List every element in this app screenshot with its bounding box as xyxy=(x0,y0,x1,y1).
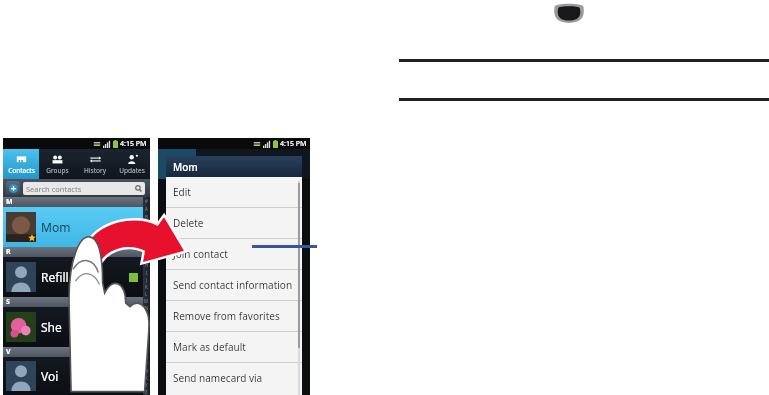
button[interactable]: Mom xyxy=(3,207,143,247)
staticText: Mark as default xyxy=(173,340,246,354)
staticText: V xyxy=(6,347,11,357)
staticText: N xyxy=(145,305,149,311)
staticText: Remove from favorites xyxy=(173,309,280,323)
staticText: She xyxy=(41,319,62,335)
staticText: W xyxy=(144,368,149,374)
button[interactable]: Send namecard via xyxy=(166,363,302,393)
button[interactable]: Add contact xyxy=(6,181,20,195)
staticText: Updates xyxy=(119,166,145,175)
button[interactable]: Voi xyxy=(3,357,143,395)
staticText: M xyxy=(6,197,13,207)
staticText: 4:15 PM xyxy=(280,139,307,149)
staticText: Send contact information xyxy=(173,278,293,292)
button[interactable]: Refill N xyxy=(3,257,143,297)
staticText: Join contact xyxy=(173,247,228,261)
button[interactable]: She xyxy=(3,307,143,347)
staticText: History xyxy=(84,166,106,175)
staticText: Edit xyxy=(173,185,191,199)
button[interactable]: History xyxy=(76,149,113,179)
staticText: Voi xyxy=(41,368,59,384)
button[interactable]: Updates xyxy=(113,149,150,179)
button[interactable]: Remove from favorites xyxy=(166,301,302,331)
staticText: X xyxy=(145,375,148,381)
staticText: Y xyxy=(145,382,148,388)
staticText: Groups xyxy=(46,166,69,175)
staticText: T xyxy=(145,347,148,353)
button[interactable]: Home key xyxy=(551,2,587,24)
staticText: I xyxy=(146,270,148,276)
button[interactable]: Alphabet index xyxy=(143,197,150,395)
staticText: L xyxy=(145,291,148,297)
staticText: P xyxy=(145,319,148,325)
staticText: S xyxy=(6,297,10,307)
staticText: A xyxy=(145,206,148,212)
staticText: M xyxy=(144,298,149,304)
staticText: B xyxy=(145,214,148,220)
staticText: V xyxy=(145,361,148,367)
button[interactable]: Delete xyxy=(166,208,302,238)
staticText: R xyxy=(6,247,11,257)
button[interactable]: Groups xyxy=(39,149,76,179)
staticText: 4:15 PM xyxy=(120,139,147,149)
staticText: Mom xyxy=(41,219,71,235)
staticText: U xyxy=(145,354,149,360)
staticText: Send namecard via xyxy=(173,371,263,385)
staticText: Contacts xyxy=(8,166,35,175)
staticText: Z xyxy=(145,389,148,395)
button[interactable]: Join contact xyxy=(166,239,302,269)
staticText: Refill N xyxy=(41,269,81,285)
staticText: O xyxy=(145,312,149,318)
staticText: Delete xyxy=(173,216,204,230)
staticText: H xyxy=(145,262,149,268)
staticText: R xyxy=(145,333,148,339)
button[interactable]: Search contacts xyxy=(23,182,145,195)
staticText: Q xyxy=(145,326,149,332)
staticText: # xyxy=(145,198,148,204)
staticText: S xyxy=(145,340,148,346)
staticText: K xyxy=(145,284,148,290)
staticText: Mom xyxy=(173,160,198,174)
staticText: Displaying 11 contacts xyxy=(197,381,271,391)
button[interactable]: Edit xyxy=(166,177,302,207)
staticText: J xyxy=(146,277,148,283)
staticText: Search contacts xyxy=(26,184,82,194)
button[interactable]: Mark as default xyxy=(166,332,302,362)
button[interactable]: Contacts xyxy=(3,149,39,179)
button[interactable]: Send contact information xyxy=(166,270,302,300)
